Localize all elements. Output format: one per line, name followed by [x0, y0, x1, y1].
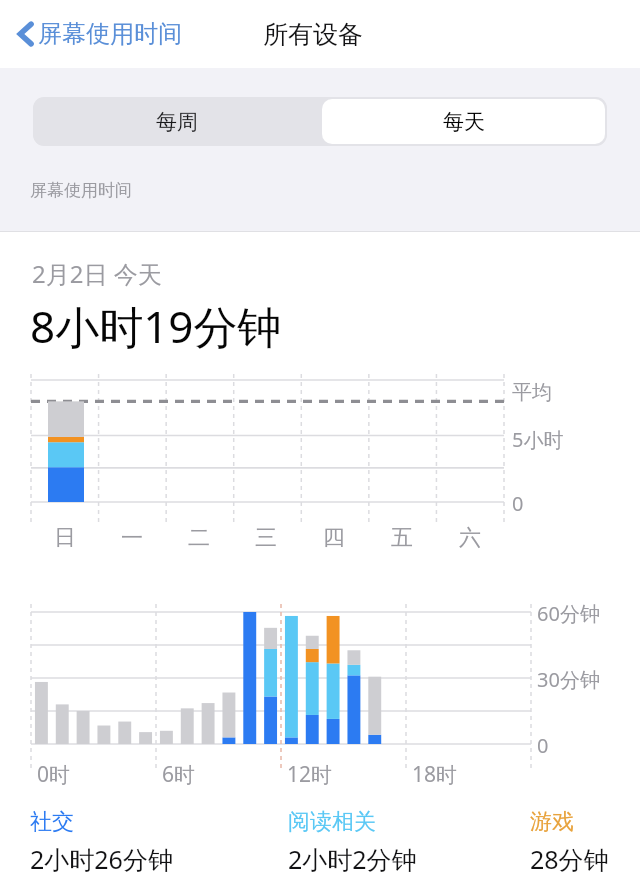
- other: 返回: [18, 21, 34, 47]
- button[interactable]: 游戏: [530, 808, 609, 876]
- staticText: 三: [255, 524, 277, 552]
- button[interactable]: 每周: [33, 97, 320, 146]
- staticText: 四: [323, 524, 345, 552]
- staticText: 阅读相关: [288, 808, 376, 836]
- staticText: 六: [459, 524, 481, 552]
- staticText: 游戏: [530, 808, 574, 836]
- staticText: 30分钟: [537, 666, 600, 693]
- button[interactable]: 返回: [14, 13, 186, 55]
- button[interactable]: 阅读相关: [288, 808, 417, 876]
- staticText: 5小时: [512, 426, 564, 453]
- staticText: 2月2日 今天: [32, 257, 162, 290]
- staticText: 18时: [412, 760, 458, 789]
- button[interactable]: 每天: [322, 99, 605, 144]
- staticText: 0: [512, 490, 524, 517]
- staticText: 0: [537, 732, 549, 759]
- staticText: 0时: [37, 760, 71, 789]
- staticText: 6时: [162, 760, 196, 789]
- staticText: 五: [391, 524, 413, 552]
- staticText: 每周: [156, 109, 198, 135]
- staticText: 社交: [30, 808, 74, 836]
- staticText: 2小时2分钟: [288, 842, 417, 876]
- staticText: 所有设备: [263, 19, 363, 50]
- staticText: 8小时19分钟: [30, 296, 282, 356]
- staticText: 每天: [443, 109, 485, 135]
- staticText: 日: [54, 524, 76, 552]
- staticText: 平均: [512, 380, 552, 405]
- staticText: 二: [188, 524, 210, 552]
- staticText: 60分钟: [537, 600, 600, 627]
- staticText: 28分钟: [530, 842, 609, 876]
- button[interactable]: 社交: [30, 808, 173, 876]
- staticText: 屏幕使用时间: [30, 180, 132, 201]
- staticText: 2小时26分钟: [30, 842, 173, 876]
- staticText: 一: [121, 524, 143, 552]
- staticText: 12时: [287, 760, 333, 789]
- staticText: 屏幕使用时间: [38, 19, 182, 49]
